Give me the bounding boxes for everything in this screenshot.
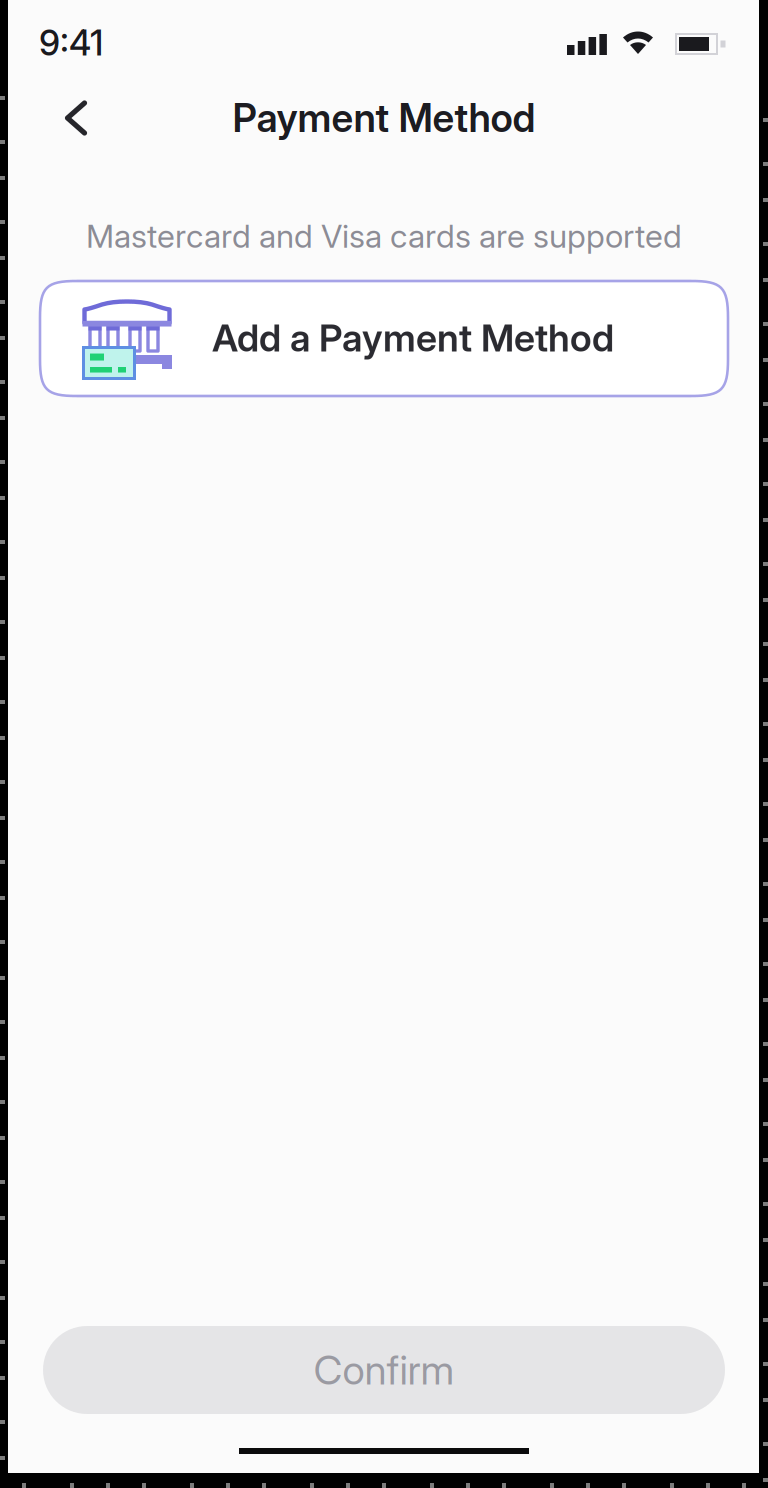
staticText: Add a Payment Method xyxy=(212,315,614,361)
button[interactable]: Back xyxy=(40,82,112,154)
staticText: Mastercard and Visa cards are supported xyxy=(86,217,682,255)
staticText: 9:41 xyxy=(39,22,103,64)
staticText: Payment Method xyxy=(232,95,535,141)
staticText: Confirm xyxy=(313,1346,454,1394)
button[interactable]: Confirm xyxy=(43,1326,725,1414)
button[interactable]: Add a Payment Method xyxy=(40,281,728,396)
